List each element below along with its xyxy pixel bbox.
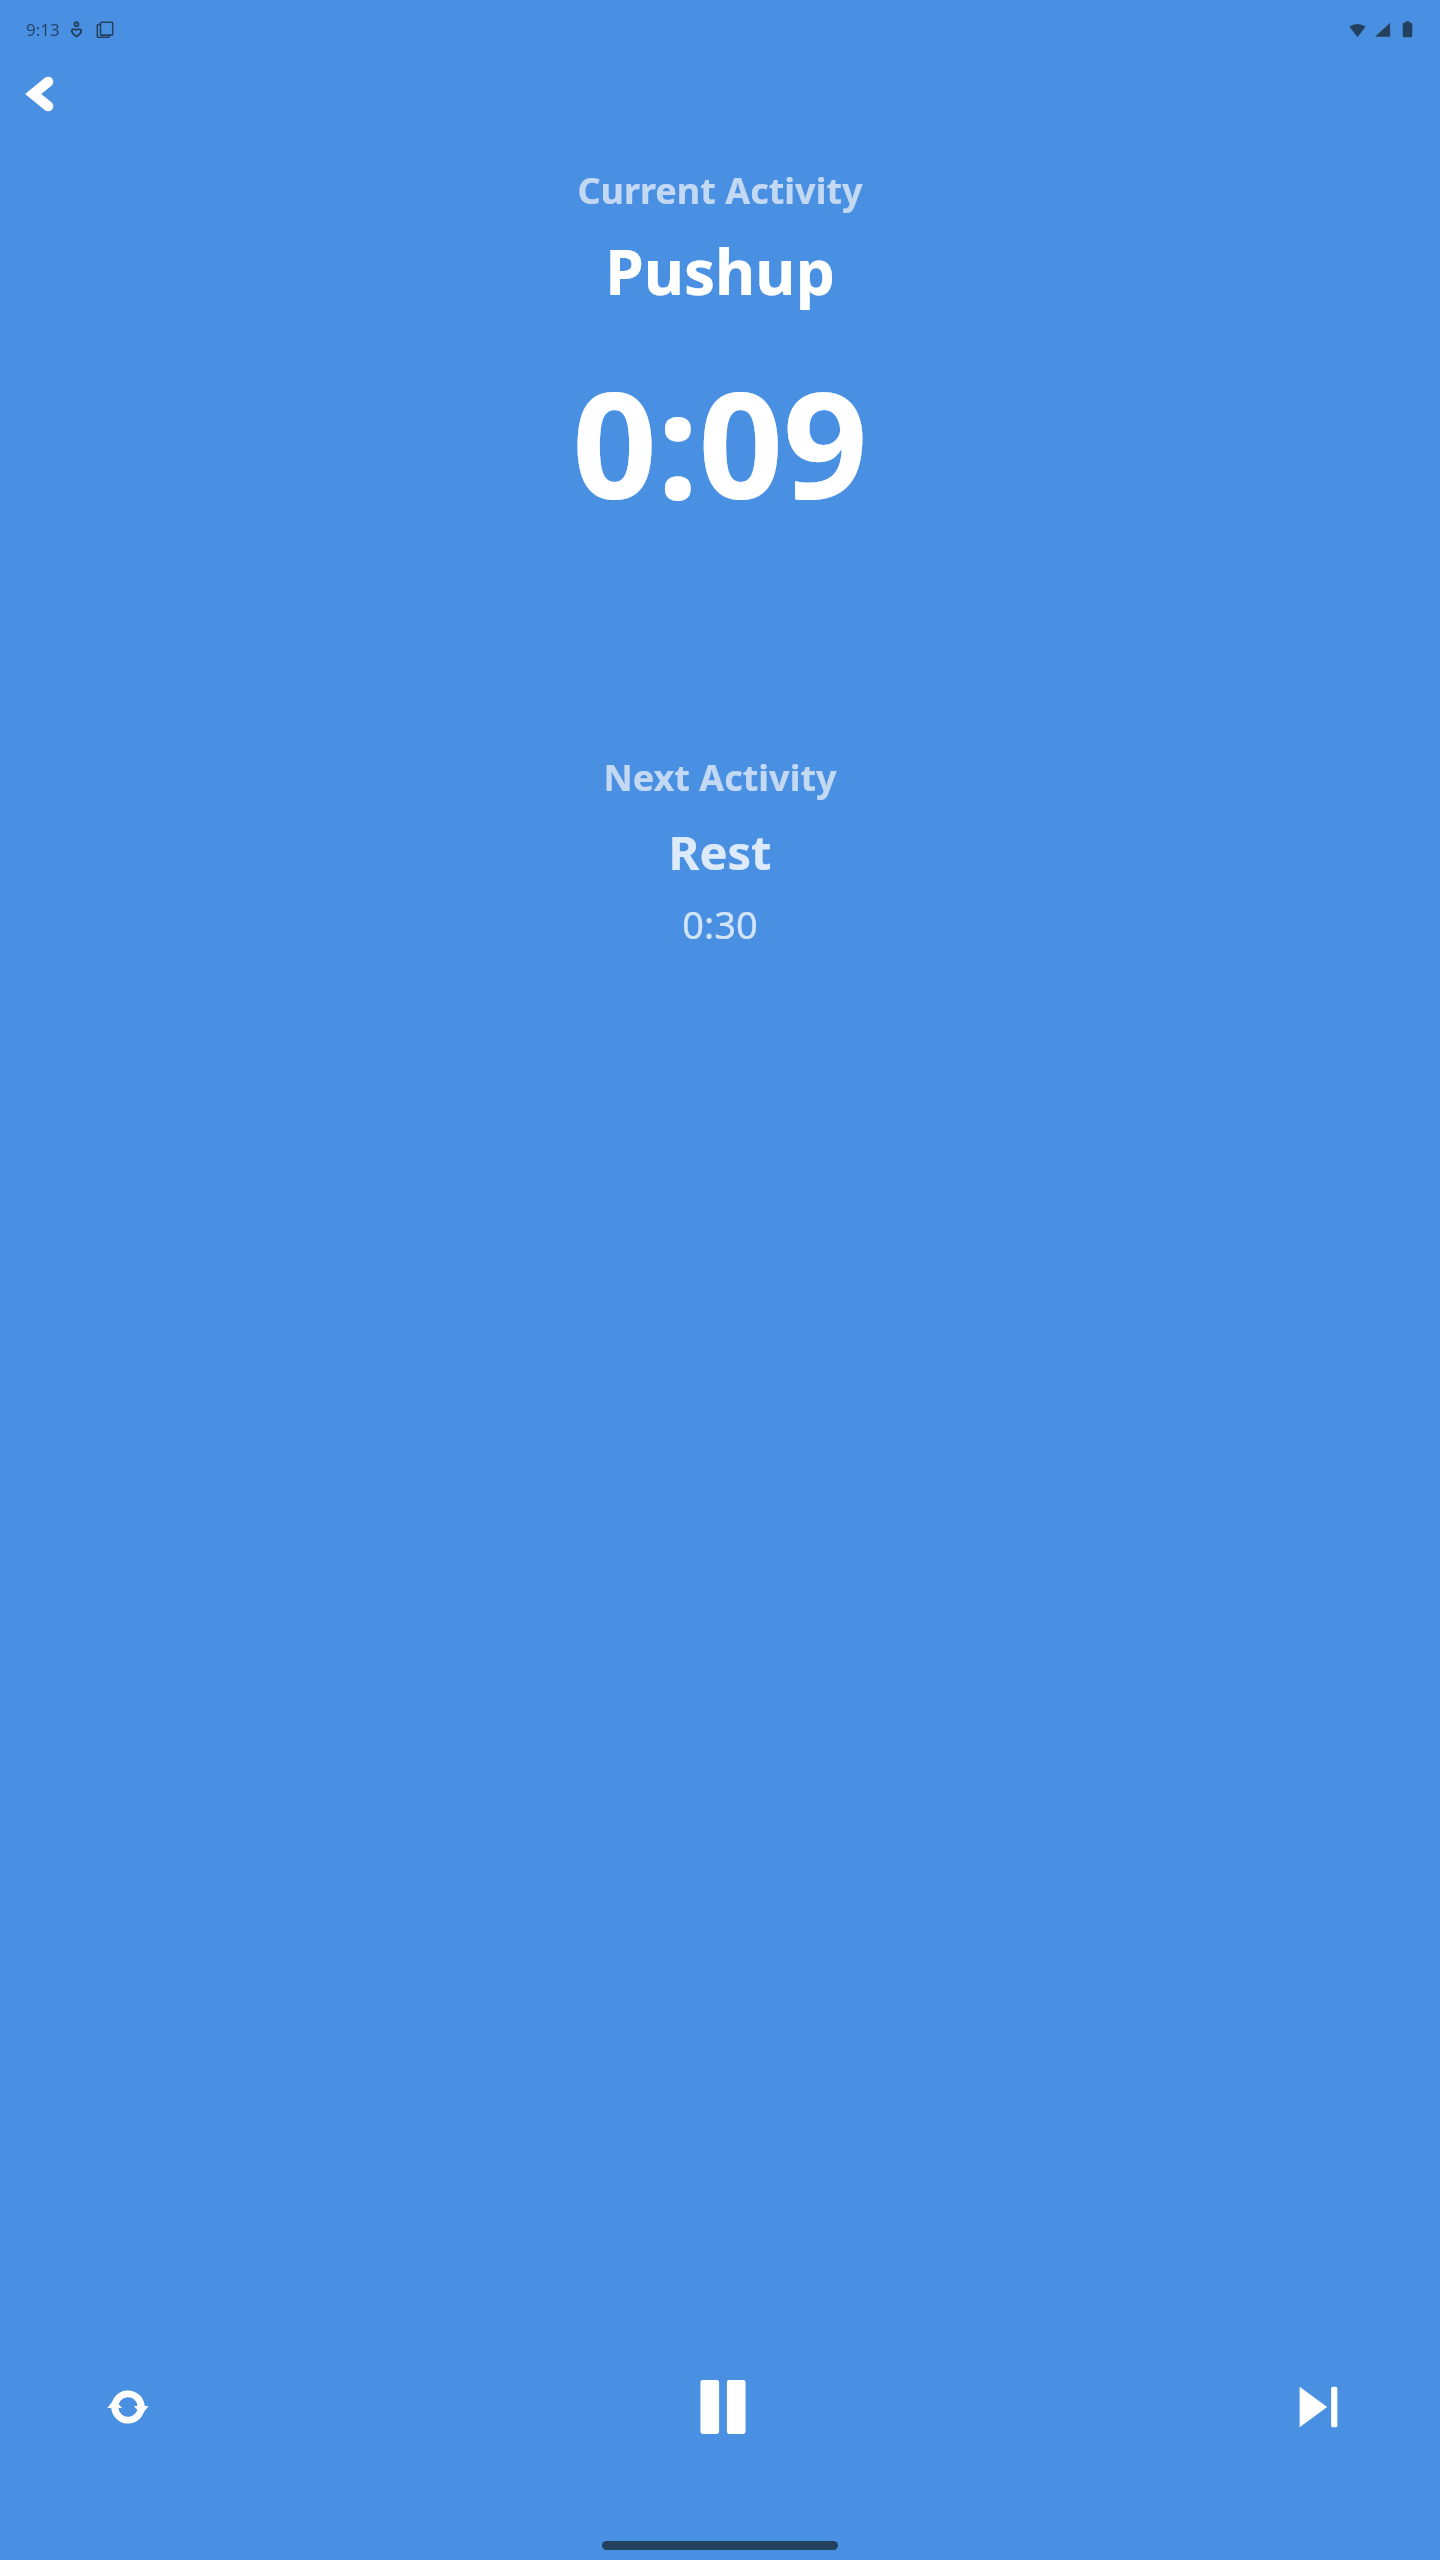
staticText: Rest [0,820,1440,884]
staticText: Pushup [0,229,1440,313]
staticText: Current Activity [0,166,1440,215]
button[interactable]: Skip next [1280,2369,1356,2445]
button[interactable]: Back [12,66,68,122]
button[interactable]: Restart [90,2369,166,2445]
button[interactable]: Pause [680,2364,766,2450]
staticText: Next Activity [0,753,1440,802]
staticText: 9:13 [26,18,60,41]
staticText: 0:09 [0,341,1440,543]
staticText: 0:30 [0,898,1440,950]
